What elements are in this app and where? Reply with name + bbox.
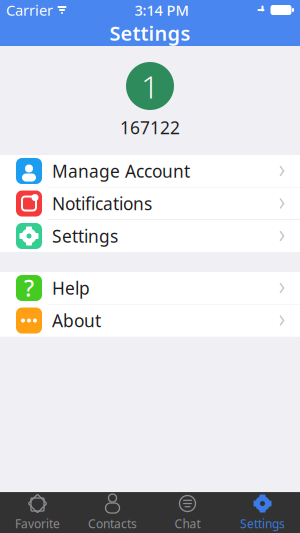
button[interactable]: ?: [0, 272, 300, 304]
button[interactable]: Manage Account: [0, 155, 300, 187]
button[interactable]: Notifications: [0, 187, 300, 219]
staticText: Contacts: [88, 515, 137, 531]
button[interactable]: Settings: [0, 220, 300, 252]
staticText: 167122: [120, 116, 180, 139]
button[interactable]: Chat: [150, 492, 225, 533]
staticText: Chat: [174, 515, 200, 531]
staticText: About: [52, 309, 101, 332]
staticText: Manage Account: [52, 159, 190, 182]
staticText: Settings: [109, 20, 190, 46]
staticText: 1: [141, 65, 159, 107]
staticText: ?: [24, 273, 34, 303]
staticText: Settings: [240, 515, 285, 531]
button[interactable]: Favorite: [0, 492, 75, 533]
staticText: Carrier: [6, 0, 53, 20]
staticText: 3:14 PM: [134, 0, 188, 20]
button[interactable]: Settings: [225, 492, 300, 533]
staticText: Settings: [52, 224, 118, 247]
staticText: Notifications: [52, 192, 152, 215]
button[interactable]: Contacts: [75, 492, 150, 533]
staticText: Help: [52, 276, 90, 299]
button[interactable]: About: [0, 304, 300, 336]
staticText: Favorite: [15, 515, 60, 531]
